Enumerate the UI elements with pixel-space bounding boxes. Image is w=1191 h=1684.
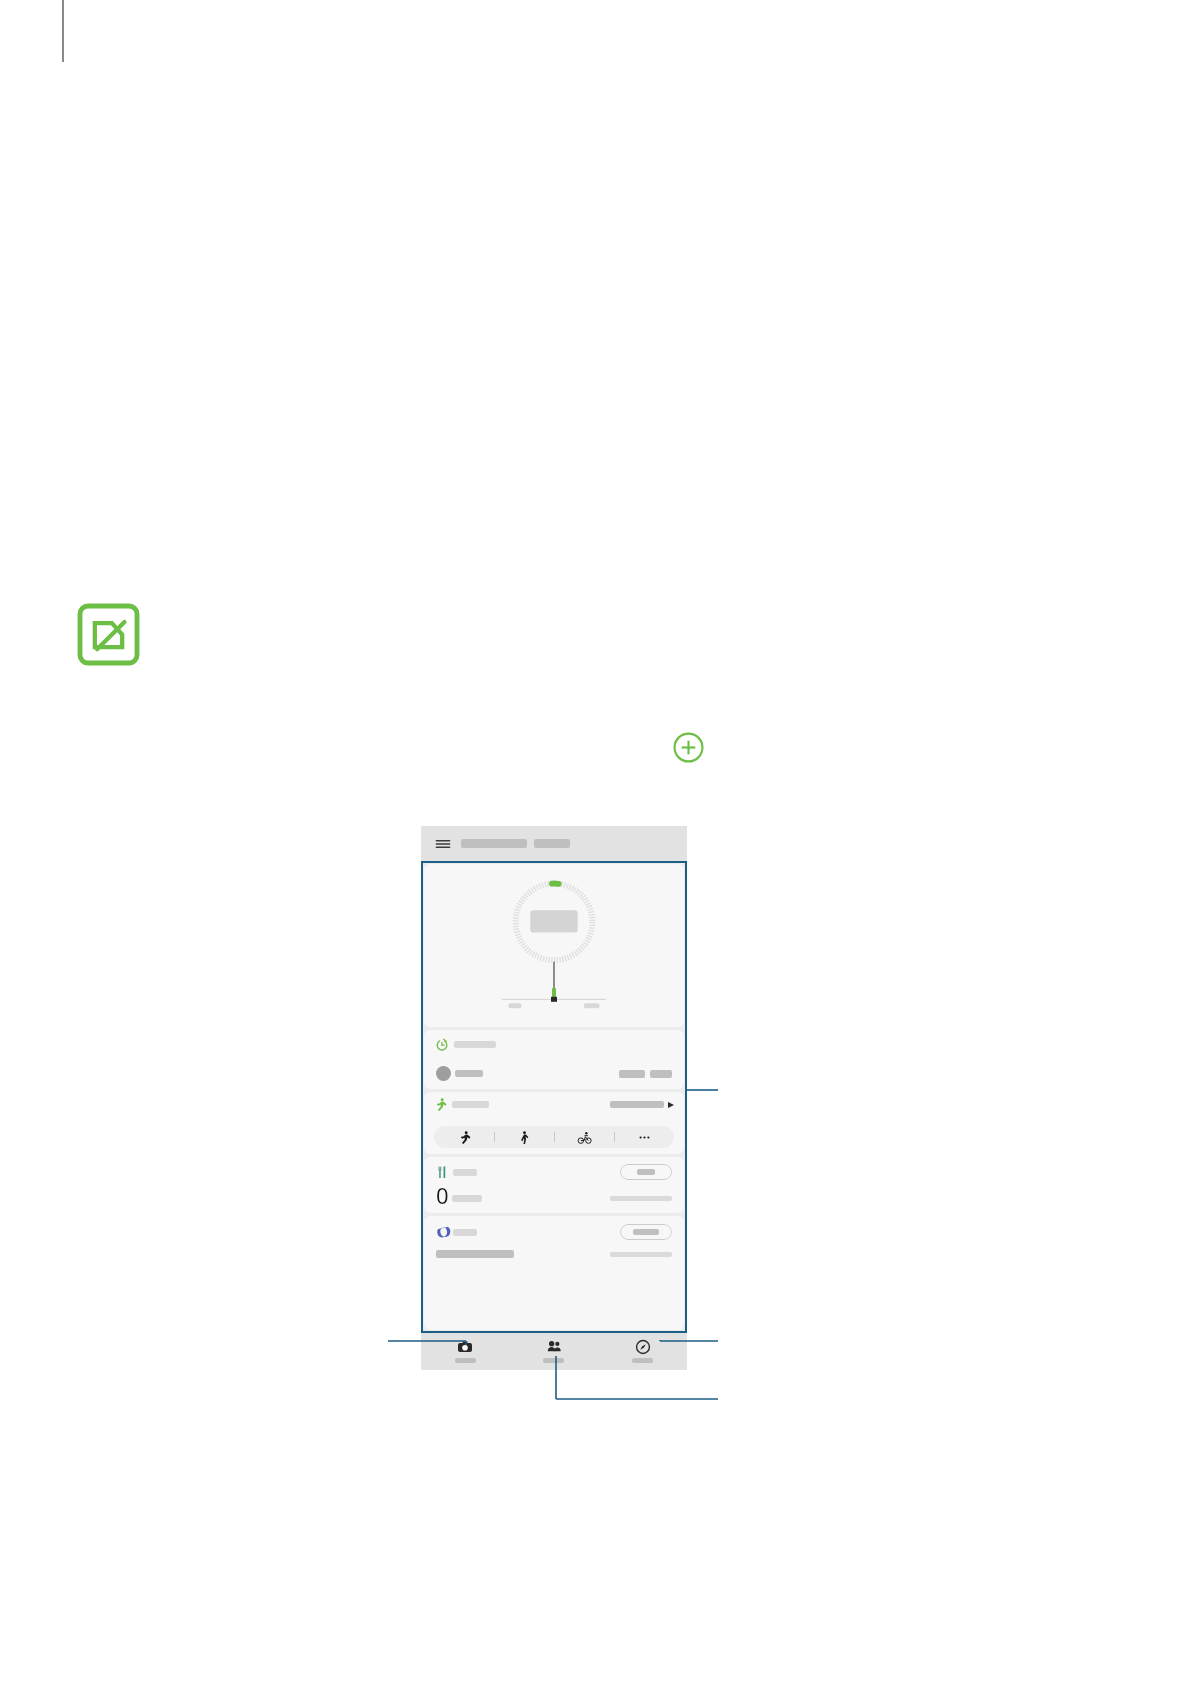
button[interactable]: More <box>615 1126 674 1148</box>
button[interactable]: Home <box>421 1333 509 1370</box>
button[interactable] <box>424 864 684 1027</box>
button[interactable]: 0 <box>424 1157 684 1213</box>
button[interactable]: Add <box>673 732 704 763</box>
button[interactable] <box>620 1224 672 1240</box>
button[interactable] <box>424 1216 684 1330</box>
button[interactable]: Run <box>424 1092 684 1154</box>
button[interactable] <box>620 1164 672 1180</box>
button[interactable]: Run <box>434 1126 494 1148</box>
button[interactable]: Menu <box>435 836 451 852</box>
button[interactable] <box>424 1030 684 1089</box>
button[interactable]: Walk <box>495 1126 554 1148</box>
staticText: 0 <box>436 1180 449 1206</box>
button[interactable]: Cycle <box>555 1126 614 1148</box>
button[interactable]: Together <box>509 1333 598 1370</box>
button[interactable]: Discover <box>598 1333 687 1370</box>
